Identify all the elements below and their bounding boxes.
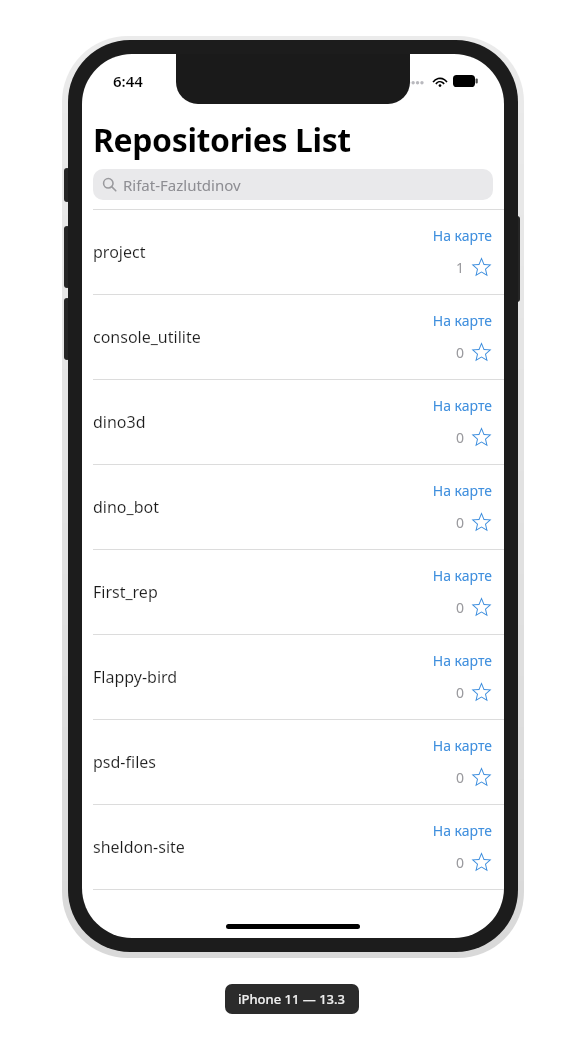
staticText: 0 xyxy=(456,853,465,872)
staticText: 0 xyxy=(456,598,465,617)
staticText: Flappy-bird xyxy=(93,666,432,688)
staticText: dino3d xyxy=(93,411,432,433)
button[interactable]: На карте xyxy=(432,396,492,415)
button[interactable]: Rifat-Fazlutdinov xyxy=(93,169,493,200)
staticText: На карте xyxy=(432,311,492,330)
button[interactable]: Star repository xyxy=(456,597,492,618)
button[interactable]: dino_bot xyxy=(82,465,504,549)
button[interactable]: console_utilite xyxy=(82,295,504,379)
staticText: Rifat-Fazlutdinov xyxy=(123,175,241,195)
button[interactable]: psd-files xyxy=(82,720,504,804)
button[interactable]: Star repository xyxy=(456,257,492,278)
staticText: 0 xyxy=(456,428,465,447)
staticText: На карте xyxy=(432,226,492,245)
button[interactable]: Star repository xyxy=(456,682,492,703)
staticText: 0 xyxy=(456,683,465,702)
staticText: Repositories List xyxy=(93,118,351,162)
button[interactable]: Star repository xyxy=(456,852,492,873)
staticText: 1 xyxy=(456,258,465,277)
staticText: На карте xyxy=(432,736,492,755)
button[interactable]: На карте xyxy=(432,226,492,245)
button[interactable]: Star repository xyxy=(456,767,492,788)
staticText: console_utilite xyxy=(93,326,432,348)
staticText: iPhone 11 — 13.3 xyxy=(238,990,346,1008)
staticText: На карте xyxy=(432,651,492,670)
staticText: На карте xyxy=(432,481,492,500)
staticText: 6:44 xyxy=(113,71,143,91)
button[interactable]: На карте xyxy=(432,651,492,670)
button[interactable]: На карте xyxy=(432,481,492,500)
button[interactable]: На карте xyxy=(432,311,492,330)
staticText: На карте xyxy=(432,821,492,840)
button[interactable]: На карте xyxy=(432,736,492,755)
button[interactable]: First_rep xyxy=(82,550,504,634)
button[interactable]: sheldon-site xyxy=(82,805,504,889)
staticText: 0 xyxy=(456,768,465,787)
staticText: psd-files xyxy=(93,751,432,773)
staticText: First_rep xyxy=(93,581,432,603)
staticText: 0 xyxy=(456,343,465,362)
staticText: dino_bot xyxy=(93,496,432,518)
button[interactable]: Star repository xyxy=(456,342,492,363)
button[interactable]: Star repository xyxy=(456,512,492,533)
staticText: На карте xyxy=(432,566,492,585)
button[interactable]: project xyxy=(82,210,504,294)
button[interactable]: Star repository xyxy=(456,427,492,448)
button[interactable]: dino3d xyxy=(82,380,504,464)
button[interactable]: На карте xyxy=(432,566,492,585)
button[interactable]: На карте xyxy=(432,821,492,840)
staticText: sheldon-site xyxy=(93,836,432,858)
staticText: 0 xyxy=(456,513,465,532)
button[interactable]: Flappy-bird xyxy=(82,635,504,719)
staticText: На карте xyxy=(432,396,492,415)
staticText: project xyxy=(93,241,432,263)
